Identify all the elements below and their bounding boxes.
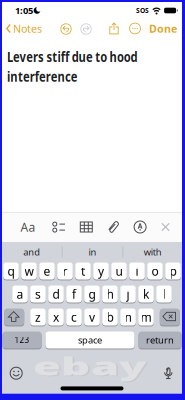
staticText: s bbox=[35, 286, 41, 302]
staticText: ebay bbox=[61, 351, 118, 381]
staticText: q bbox=[7, 263, 14, 279]
button[interactable]: Redo bbox=[80, 23, 91, 34]
button[interactable]: d bbox=[48, 285, 64, 303]
staticText: Aa bbox=[20, 219, 35, 235]
staticText: k bbox=[143, 286, 149, 302]
button[interactable]: p bbox=[165, 262, 181, 280]
button[interactable]: a bbox=[12, 285, 28, 303]
button[interactable]: c bbox=[66, 308, 82, 326]
button[interactable]: q bbox=[3, 262, 19, 280]
button[interactable]: Share bbox=[109, 22, 119, 34]
staticText: f bbox=[72, 286, 76, 302]
staticText: and bbox=[23, 246, 40, 258]
button[interactable]: g bbox=[84, 285, 100, 303]
button[interactable]: More bbox=[129, 22, 141, 34]
staticText: z bbox=[35, 309, 41, 325]
button[interactable]: l bbox=[156, 285, 172, 303]
staticText: o bbox=[151, 263, 158, 279]
button[interactable]: Markup bbox=[134, 220, 147, 233]
button[interactable]: w bbox=[21, 262, 37, 280]
button[interactable]: b bbox=[102, 308, 118, 326]
button[interactable]: v bbox=[84, 308, 100, 326]
staticText: m bbox=[140, 309, 151, 325]
staticText: x bbox=[53, 309, 59, 325]
staticText: n bbox=[124, 309, 131, 325]
button[interactable]: Checklist bbox=[52, 221, 65, 232]
staticText: d bbox=[52, 286, 59, 302]
staticText: y bbox=[98, 263, 104, 279]
staticText: v bbox=[89, 309, 95, 325]
button[interactable]: n bbox=[120, 308, 136, 326]
button[interactable]: with bbox=[123, 242, 182, 262]
button[interactable]: e bbox=[39, 262, 55, 280]
staticText: a bbox=[16, 286, 23, 302]
staticText: b bbox=[106, 309, 113, 325]
staticText: h bbox=[106, 286, 113, 302]
staticText: SOS bbox=[136, 6, 149, 15]
button[interactable]: f bbox=[66, 285, 82, 303]
button[interactable]: Notes bbox=[6, 21, 42, 36]
button[interactable]: Table bbox=[80, 221, 93, 232]
button[interactable]: x bbox=[48, 308, 64, 326]
button[interactable]: Emoji bbox=[10, 367, 24, 381]
button[interactable]: Format bbox=[18, 217, 38, 237]
button[interactable]: h bbox=[102, 285, 118, 303]
staticText: p bbox=[169, 263, 176, 279]
staticText: c bbox=[71, 309, 77, 325]
staticText: r bbox=[62, 263, 67, 279]
staticText: t bbox=[81, 263, 85, 279]
button[interactable]: space bbox=[45, 331, 134, 349]
staticText: in bbox=[88, 246, 96, 258]
button[interactable]: t bbox=[75, 262, 91, 280]
staticText: Done bbox=[149, 21, 177, 36]
button[interactable]: o bbox=[147, 262, 163, 280]
button[interactable]: Undo bbox=[60, 23, 71, 34]
button[interactable]: Delete bbox=[160, 308, 180, 326]
button[interactable]: r bbox=[57, 262, 73, 280]
button[interactable]: j bbox=[120, 285, 136, 303]
button[interactable]: y bbox=[93, 262, 109, 280]
staticText: Levers stiff due to hood bbox=[7, 48, 162, 66]
staticText: with bbox=[144, 246, 162, 258]
staticText: Notes bbox=[13, 21, 42, 36]
button[interactable]: k bbox=[138, 285, 154, 303]
staticText: e bbox=[43, 263, 50, 279]
button[interactable]: return bbox=[138, 331, 181, 349]
button[interactable]: Dismiss keyboard bbox=[161, 222, 170, 231]
staticText: 123 bbox=[14, 335, 29, 345]
staticText: return bbox=[146, 334, 174, 346]
button[interactable]: Attach bbox=[107, 220, 119, 233]
staticText: l bbox=[162, 286, 165, 302]
button[interactable]: z bbox=[30, 308, 46, 326]
button[interactable]: and bbox=[2, 242, 62, 262]
staticText: ebay bbox=[62, 352, 119, 382]
staticText: 1:05 bbox=[15, 4, 33, 17]
button[interactable]: s bbox=[30, 285, 46, 303]
button[interactable]: m bbox=[138, 308, 154, 326]
button[interactable]: Shift bbox=[4, 308, 24, 326]
button[interactable]: i bbox=[129, 262, 145, 280]
staticText: g bbox=[88, 286, 95, 302]
button[interactable]: in bbox=[62, 242, 122, 262]
button[interactable]: 123 bbox=[2, 331, 41, 349]
button[interactable]: u bbox=[111, 262, 127, 280]
staticText: i bbox=[135, 263, 138, 279]
staticText: j bbox=[126, 286, 129, 302]
button[interactable]: Dictation bbox=[163, 367, 173, 381]
staticText: u bbox=[115, 263, 122, 279]
button[interactable]: Done bbox=[149, 21, 177, 36]
staticText: space bbox=[78, 334, 102, 346]
staticText: w bbox=[24, 263, 33, 279]
staticText: interference bbox=[7, 68, 91, 85]
